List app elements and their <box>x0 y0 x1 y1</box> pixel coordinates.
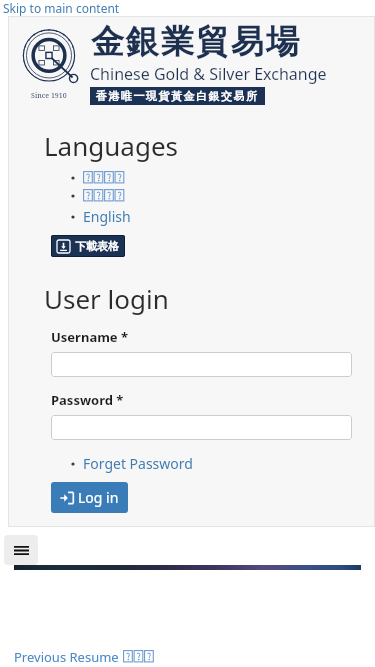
staticText: Username * <box>51 328 129 346</box>
staticText: Chinese Gold & Silver Exchange <box>90 63 327 85</box>
button[interactable] <box>68 189 126 203</box>
staticText: Since 1910 <box>31 91 67 101</box>
button[interactable]: Menu <box>4 535 38 565</box>
staticText: Previous Resume <box>14 648 123 666</box>
button[interactable]: English <box>68 207 131 226</box>
staticText: 下載表格 <box>75 239 119 253</box>
button[interactable] <box>51 415 352 440</box>
button[interactable] <box>51 352 352 377</box>
staticText: Log in <box>78 488 119 507</box>
button[interactable]: Log in <box>51 482 128 513</box>
staticText: 香港唯一現貨黃金白銀交易所 <box>96 89 259 103</box>
button[interactable]: Previous Resume <box>14 648 156 666</box>
staticText: 金銀業貿易場 <box>90 21 300 63</box>
button[interactable]: Forget Password <box>68 454 193 473</box>
staticText: Forget Password <box>83 454 193 473</box>
staticText: Languages <box>44 128 179 163</box>
staticText: User login <box>44 281 169 316</box>
staticText: Skip to main content <box>3 0 120 16</box>
staticText: English <box>83 207 131 226</box>
button[interactable]: Skip to main content <box>0 0 375 16</box>
staticText: Password * <box>51 391 124 409</box>
button[interactable] <box>68 171 126 185</box>
button[interactable]: 下載表格 <box>51 235 125 257</box>
